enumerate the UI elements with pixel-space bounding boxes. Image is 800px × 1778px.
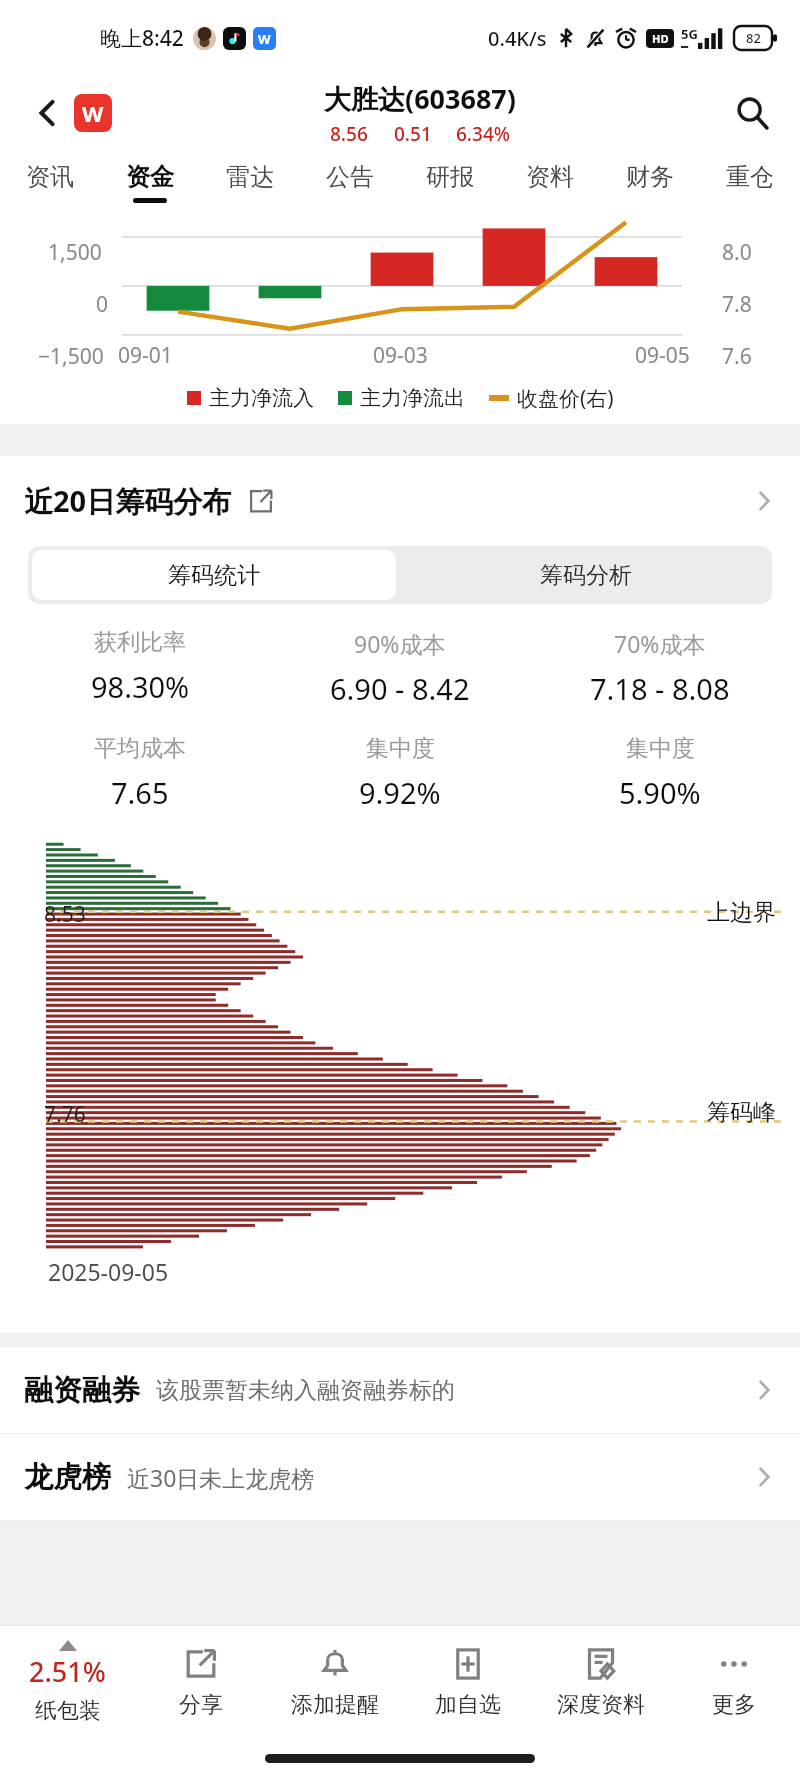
staticText: 该股票暂未纳入融资融券标的 — [156, 1376, 455, 1405]
button[interactable]: 财务 — [600, 150, 700, 214]
staticText: 5G — [681, 25, 698, 43]
staticText: 90%成本 — [354, 628, 446, 659]
button[interactable]: Add reminder — [268, 1626, 401, 1738]
staticText: 资料 — [526, 162, 574, 192]
staticText: 财务 — [626, 162, 674, 192]
staticText: 主力净流出 — [360, 385, 465, 411]
staticText: 筹码分析 — [540, 561, 632, 590]
staticText: 8.56 — [330, 121, 368, 147]
staticText: 重仓 — [726, 162, 774, 192]
staticText: 近20日筹码分布 — [24, 481, 232, 521]
button[interactable]: More — [667, 1626, 800, 1738]
staticText: W — [258, 30, 271, 48]
staticText: 公告 — [326, 162, 374, 192]
staticText: 6.90 - 8.42 — [330, 669, 470, 708]
staticText: 资讯 — [26, 162, 74, 192]
button[interactable]: 2.51% — [0, 1626, 134, 1738]
button[interactable]: 重仓 — [700, 150, 800, 214]
staticText: HD — [652, 31, 669, 46]
button[interactable]: 资讯 — [0, 150, 100, 214]
button[interactable]: 龙虎榜 — [0, 1434, 800, 1520]
staticText: 7.6 — [722, 342, 752, 371]
staticText: 近30日未上龙虎榜 — [127, 1462, 315, 1493]
staticText: 9.92% — [359, 773, 441, 812]
staticText: 深度资料 — [557, 1691, 645, 1719]
staticText: 上边界 — [707, 898, 776, 927]
staticText: 09-01 — [118, 341, 173, 370]
staticText: W — [82, 98, 104, 128]
staticText: 集中度 — [626, 734, 695, 763]
staticText: 2.51% — [29, 1653, 106, 1690]
staticText: 雷达 — [226, 162, 274, 192]
button[interactable]: 融资融券 — [0, 1347, 800, 1433]
staticText: 主力净流入 — [209, 385, 314, 411]
staticText: 龙虎榜 — [24, 1459, 111, 1496]
button[interactable]: 筹码统计 — [32, 550, 396, 600]
button[interactable]: Share — [134, 1626, 268, 1738]
staticText: 收盘价(右) — [517, 384, 614, 413]
staticText: 研报 — [426, 162, 474, 192]
staticText: 8.0 — [722, 238, 752, 267]
button[interactable]: Search — [728, 89, 776, 137]
staticText: 融资融券 — [24, 1372, 140, 1409]
button[interactable]: Weibo — [74, 94, 112, 132]
staticText: 1,500 — [48, 238, 102, 267]
staticText: 大胜达(603687) — [324, 80, 516, 117]
staticText: 7.18 - 8.08 — [590, 669, 730, 708]
staticText: 更多 — [712, 1691, 756, 1719]
staticText: 平均成本 — [94, 734, 186, 763]
staticText: 7.65 — [111, 773, 169, 812]
staticText: 6.34% — [456, 121, 510, 147]
staticText: 纸包装 — [35, 1697, 101, 1725]
button[interactable]: 资料 — [500, 150, 600, 214]
staticText: 5.90% — [619, 773, 701, 812]
staticText: 加自选 — [435, 1691, 501, 1719]
staticText: 获利比率 — [94, 628, 186, 657]
button[interactable]: 研报 — [400, 150, 500, 214]
button[interactable]: 筹码分析 — [400, 546, 772, 604]
staticText: 0.4K/s — [488, 25, 547, 52]
staticText: 筹码统计 — [168, 561, 260, 590]
staticText: 98.30% — [91, 667, 190, 706]
staticText: 8.53 — [44, 900, 86, 929]
staticText: 集中度 — [366, 734, 435, 763]
staticText: 资金 — [126, 162, 174, 192]
staticText: 7.76 — [44, 1100, 86, 1129]
button[interactable]: Back — [24, 90, 70, 136]
button[interactable]: 近20日筹码分布 — [0, 456, 800, 546]
staticText: 晚上8:42 — [100, 24, 184, 53]
staticText: 09-03 — [373, 341, 428, 370]
staticText: 分享 — [179, 1691, 223, 1719]
staticText: 7.8 — [722, 290, 752, 319]
button[interactable]: 资金 — [100, 150, 200, 214]
staticText: 0 — [96, 290, 109, 319]
button[interactable]: Add to watchlist — [401, 1626, 534, 1738]
staticText: 70%成本 — [614, 628, 706, 659]
staticText: 09-05 — [635, 341, 690, 370]
button[interactable]: 公告 — [300, 150, 400, 214]
staticText: 筹码峰 — [707, 1098, 776, 1127]
staticText: 添加提醒 — [291, 1691, 379, 1719]
staticText: 0.51 — [394, 121, 432, 147]
staticText: 82 — [746, 29, 761, 47]
staticText: −1,500 — [38, 342, 104, 371]
button[interactable]: 雷达 — [200, 150, 300, 214]
staticText: 2025-09-05 — [48, 1256, 169, 1287]
button[interactable]: Deep data — [534, 1626, 667, 1738]
